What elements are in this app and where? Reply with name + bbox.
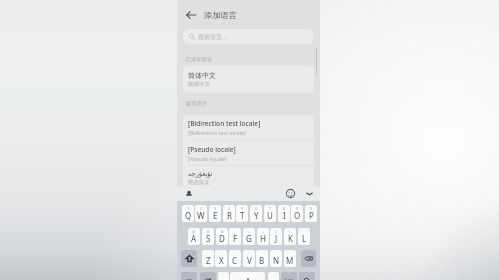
button[interactable]: [Bidirection test locale] bbox=[183, 115, 314, 140]
button[interactable]: & bbox=[216, 228, 228, 245]
staticText: 搜索语言... bbox=[198, 33, 227, 41]
staticText: 4 bbox=[228, 206, 231, 211]
staticText: 7 bbox=[269, 206, 272, 211]
staticText: [Bidirection test locale] bbox=[188, 119, 261, 128]
staticText: 8 bbox=[283, 206, 286, 211]
button[interactable]: ) bbox=[284, 228, 296, 245]
button[interactable]: 搜索语言... bbox=[183, 29, 314, 44]
button[interactable]: Search bbox=[299, 272, 315, 280]
button[interactable]: ئۇيغۇرچە bbox=[183, 166, 314, 190]
staticText: # bbox=[207, 229, 210, 234]
button[interactable]: Switch language bbox=[200, 272, 216, 280]
button[interactable]: @ bbox=[188, 228, 200, 245]
staticText: L bbox=[302, 233, 307, 244]
button[interactable]: Backspace bbox=[301, 250, 316, 267]
button[interactable]: 6 bbox=[250, 205, 262, 222]
staticText: ) bbox=[289, 229, 291, 234]
button[interactable]: 9 bbox=[291, 205, 303, 222]
button[interactable]: Numbers bbox=[281, 272, 297, 280]
staticText: C bbox=[232, 255, 238, 266]
staticText: ئۇيغۇرچە bbox=[188, 170, 213, 178]
staticText: _ bbox=[234, 229, 236, 234]
button[interactable]: Comma bbox=[218, 272, 229, 280]
staticText: I bbox=[283, 210, 286, 221]
button[interactable]: 2 bbox=[195, 205, 207, 222]
button[interactable]: 7 bbox=[264, 205, 276, 222]
button[interactable]: Hide keyboard bbox=[303, 187, 315, 199]
staticText: & bbox=[221, 229, 224, 234]
button[interactable]: 4 bbox=[223, 205, 235, 222]
staticText: J bbox=[275, 233, 278, 244]
button[interactable]: 0 bbox=[305, 205, 317, 222]
button[interactable]: Shift bbox=[181, 250, 197, 267]
button[interactable]: 5 bbox=[236, 205, 248, 222]
staticText: 建议语言 bbox=[186, 100, 207, 107]
button[interactable]: Space bbox=[230, 272, 265, 280]
button[interactable]: Voice input bbox=[183, 188, 195, 200]
staticText: [Pseudo locale] bbox=[188, 155, 227, 162]
staticText: @ bbox=[192, 229, 196, 234]
button[interactable]: B bbox=[256, 250, 268, 267]
staticText: 简体中文 bbox=[188, 81, 211, 88]
staticText: M bbox=[286, 255, 294, 266]
staticText: 2 bbox=[200, 206, 203, 211]
button[interactable]: # bbox=[202, 228, 214, 245]
staticText: Q bbox=[185, 210, 192, 221]
button[interactable]: C bbox=[229, 250, 241, 267]
staticText: T bbox=[240, 210, 245, 221]
button[interactable]: Symbols bbox=[181, 272, 197, 280]
staticText: Z bbox=[206, 255, 211, 266]
staticText: 1 bbox=[187, 206, 190, 211]
button[interactable]: 3 bbox=[209, 205, 221, 222]
button[interactable]: Back bbox=[185, 9, 197, 21]
staticText: D bbox=[219, 233, 225, 244]
staticText: 添加语言 bbox=[204, 10, 237, 20]
button[interactable]: 简体中文 bbox=[183, 66, 314, 93]
staticText: R bbox=[227, 210, 232, 221]
staticText: G bbox=[246, 233, 252, 244]
staticText: 0 bbox=[310, 206, 313, 211]
button[interactable]: [Pseudo locale] bbox=[183, 141, 314, 165]
button[interactable]: X bbox=[215, 250, 227, 267]
button[interactable]: - bbox=[243, 228, 255, 245]
staticText: F bbox=[233, 233, 238, 244]
staticText: + bbox=[262, 229, 265, 234]
button[interactable]: + bbox=[257, 228, 269, 245]
staticText: S bbox=[206, 233, 211, 244]
button[interactable]: Period bbox=[268, 272, 279, 280]
staticText: 3 bbox=[214, 206, 217, 211]
staticText: ( bbox=[275, 229, 277, 234]
button[interactable]: M bbox=[284, 250, 296, 267]
button[interactable]: N bbox=[270, 250, 282, 267]
staticText: 123 bbox=[284, 277, 294, 280]
button[interactable]: Emoji bbox=[284, 187, 296, 199]
button[interactable]: ( bbox=[270, 228, 282, 245]
staticText: 6 bbox=[255, 206, 258, 211]
staticText: W bbox=[197, 210, 205, 221]
staticText: H bbox=[260, 233, 266, 244]
staticText: X bbox=[219, 255, 224, 266]
staticText: 简体中文 bbox=[188, 71, 216, 80]
staticText: N bbox=[273, 255, 280, 266]
staticText: 9 bbox=[296, 206, 299, 211]
button[interactable]: _ bbox=[229, 228, 241, 245]
staticText: V bbox=[247, 255, 252, 266]
staticText: E bbox=[213, 210, 218, 221]
staticText: 已添加语言 bbox=[186, 56, 212, 63]
button[interactable]: 8 bbox=[278, 205, 290, 222]
staticText: A bbox=[191, 233, 197, 244]
staticText: 5 bbox=[241, 206, 244, 211]
button[interactable]: 1 bbox=[182, 205, 194, 222]
staticText: O bbox=[294, 210, 301, 221]
button[interactable]: V bbox=[243, 250, 255, 267]
staticText: 维吾尔文 bbox=[188, 179, 210, 186]
staticText: U bbox=[267, 210, 273, 221]
staticText: [Bidirection test locale] bbox=[188, 129, 246, 136]
staticText: P bbox=[309, 210, 314, 221]
button[interactable]: Z bbox=[202, 250, 214, 267]
staticText: K bbox=[288, 233, 293, 244]
staticText: - bbox=[248, 229, 250, 234]
button[interactable]: L bbox=[298, 228, 310, 245]
staticText: [Pseudo locale] bbox=[188, 145, 236, 154]
staticText: Y bbox=[254, 210, 259, 221]
